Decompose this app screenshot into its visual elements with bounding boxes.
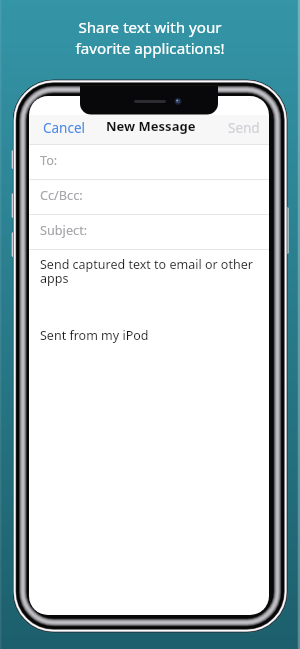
staticText: Subject: — [40, 221, 88, 238]
staticText: Cc/Bcc: — [40, 186, 83, 203]
button[interactable]: Cancel — [32, 114, 97, 142]
staticText: New Message — [106, 117, 196, 135]
staticText: Send captured text to email or other app… — [40, 256, 256, 287]
staticText: Cancel — [43, 119, 86, 137]
button[interactable]: Subject: — [29, 216, 99, 243]
staticText: Share text with your favorite applicatio… — [75, 17, 225, 59]
staticText: To: — [40, 151, 58, 168]
button[interactable]: Send — [217, 114, 269, 142]
button[interactable]: Cc/Bcc: — [29, 181, 94, 208]
staticText: Send — [228, 119, 260, 137]
staticText: Sent from my iPod — [40, 327, 149, 344]
button[interactable]: To: — [29, 146, 69, 173]
